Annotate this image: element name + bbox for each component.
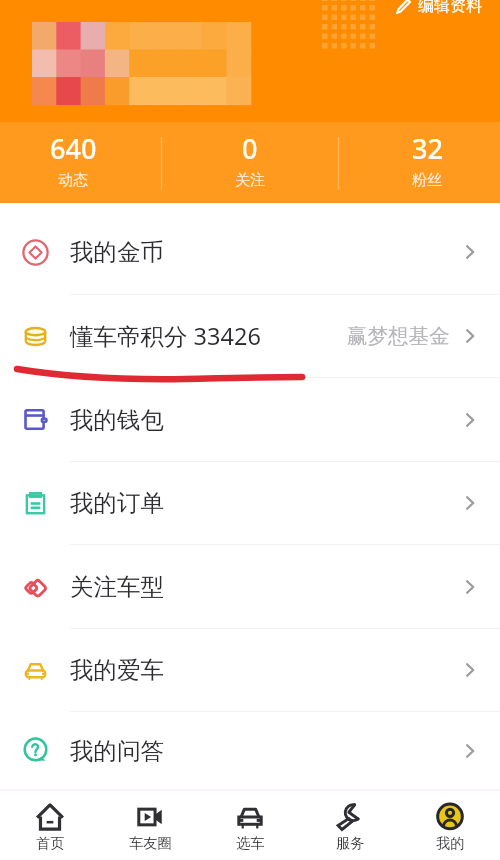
- button[interactable]: 我的爱车: [0, 629, 500, 711]
- staticText: 粉丝: [412, 171, 442, 190]
- button[interactable]: Mine: [400, 803, 500, 852]
- button[interactable]: Car friends: [100, 803, 200, 852]
- staticText: 编辑资料: [418, 0, 482, 16]
- button[interactable]: 懂车帝积分 33426: [0, 295, 500, 377]
- button[interactable]: 关注车型: [0, 545, 500, 628]
- staticText: 服务: [336, 834, 365, 852]
- staticText: 懂车帝积分 33426: [70, 320, 261, 352]
- staticText: 640: [50, 130, 97, 167]
- staticText: 关注车型: [70, 572, 164, 602]
- button[interactable]: Choose car: [200, 803, 300, 852]
- staticText: 我的: [436, 834, 465, 852]
- staticText: 我的订单: [70, 488, 164, 518]
- staticText: 0: [242, 130, 258, 167]
- staticText: 我的金币: [70, 237, 164, 267]
- staticText: 赢梦想基金: [347, 323, 450, 349]
- staticText: 我的钱包: [70, 405, 164, 435]
- button[interactable]: 编辑资料: [385, 0, 500, 20]
- button[interactable]: 0: [200, 130, 300, 192]
- staticText: 32: [412, 130, 443, 167]
- staticText: 首页: [36, 834, 65, 852]
- button[interactable]: Home: [0, 803, 100, 852]
- button[interactable]: 640: [23, 130, 123, 192]
- staticText: 选车: [236, 834, 265, 852]
- staticText: 关注: [235, 171, 265, 190]
- button[interactable]: 我的问答: [0, 712, 500, 789]
- button[interactable]: 我的钱包: [0, 378, 500, 461]
- button[interactable]: 32: [377, 130, 477, 192]
- button[interactable]: Service: [300, 803, 400, 852]
- button[interactable]: 我的金币: [0, 210, 500, 294]
- button[interactable]: 我的订单: [0, 462, 500, 544]
- staticText: 动态: [58, 171, 88, 190]
- staticText: 我的爱车: [70, 655, 164, 685]
- staticText: 车友圈: [129, 834, 172, 852]
- staticText: 我的问答: [70, 736, 164, 766]
